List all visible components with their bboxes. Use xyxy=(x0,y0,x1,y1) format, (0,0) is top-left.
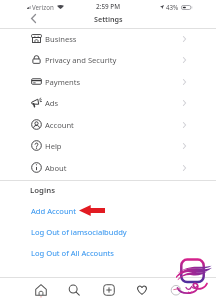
button[interactable]: Back xyxy=(24,11,42,26)
button[interactable]: Ads xyxy=(0,92,216,113)
staticText: Payments xyxy=(45,77,81,87)
staticText: Log Out of iamsocialbuddy xyxy=(31,227,127,237)
button[interactable]: Profile xyxy=(165,279,187,300)
button[interactable]: Privacy and Security xyxy=(0,49,216,70)
button[interactable]: Search xyxy=(63,279,85,300)
staticText: 43% xyxy=(166,3,179,11)
staticText: Add Account xyxy=(31,206,77,216)
button[interactable]: Payments xyxy=(0,71,216,92)
button[interactable]: Help xyxy=(0,135,216,156)
staticText: Ads xyxy=(45,98,59,108)
staticText: Help xyxy=(45,141,62,151)
staticText: Settings xyxy=(94,14,123,24)
button[interactable]: Add Account xyxy=(0,200,216,221)
button[interactable]: Home xyxy=(30,279,52,300)
staticText: Log Out of All Accounts xyxy=(31,248,114,258)
button[interactable]: About xyxy=(0,157,216,178)
button[interactable]: Activity xyxy=(131,279,153,300)
button[interactable]: New post xyxy=(98,279,120,300)
button[interactable]: Account xyxy=(0,114,216,135)
staticText: About xyxy=(45,163,67,173)
button[interactable]: Log Out of All Accounts xyxy=(0,242,216,263)
staticText: Verizon xyxy=(32,3,54,11)
button[interactable]: Log Out of iamsocialbuddy xyxy=(0,221,216,242)
staticText: Privacy and Security xyxy=(45,55,117,65)
staticText: Logins xyxy=(30,185,55,196)
staticText: Business xyxy=(45,34,77,44)
button[interactable]: Business xyxy=(0,28,216,49)
staticText: 2:59 PM xyxy=(96,2,121,11)
staticText: Account xyxy=(45,120,74,130)
